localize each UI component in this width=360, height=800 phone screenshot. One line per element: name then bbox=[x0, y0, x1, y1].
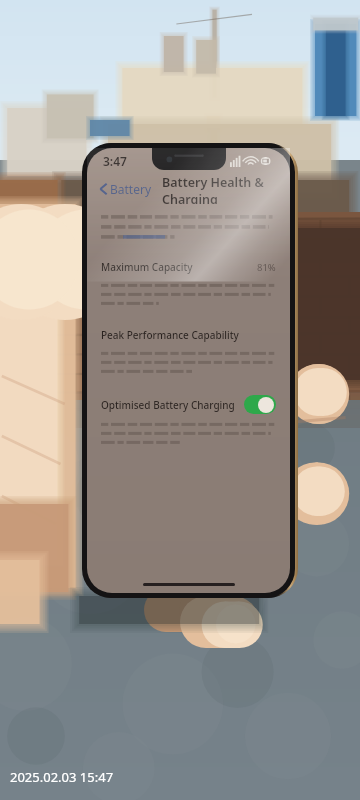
staticText: Optimised Battery Charging bbox=[101, 398, 235, 412]
staticText: 3:47 bbox=[103, 153, 127, 169]
staticText: Battery bbox=[110, 181, 152, 197]
button[interactable]: Optimised Battery Charging bbox=[101, 394, 276, 415]
staticText: Battery Health & Charging bbox=[162, 174, 280, 204]
staticText: Maximum Capacity bbox=[101, 260, 193, 274]
staticText: Peak Performance Capability bbox=[101, 328, 239, 342]
staticText: 81% bbox=[257, 261, 276, 274]
button[interactable]: Optimised Battery Charging toggle, on bbox=[244, 395, 276, 414]
button[interactable]: Battery bbox=[95, 178, 156, 200]
button[interactable]: Maximum Capacity bbox=[101, 258, 276, 276]
button[interactable]: Peak Performance Capability bbox=[101, 326, 276, 344]
staticText: 2025.02.03 15:47 bbox=[10, 768, 114, 786]
